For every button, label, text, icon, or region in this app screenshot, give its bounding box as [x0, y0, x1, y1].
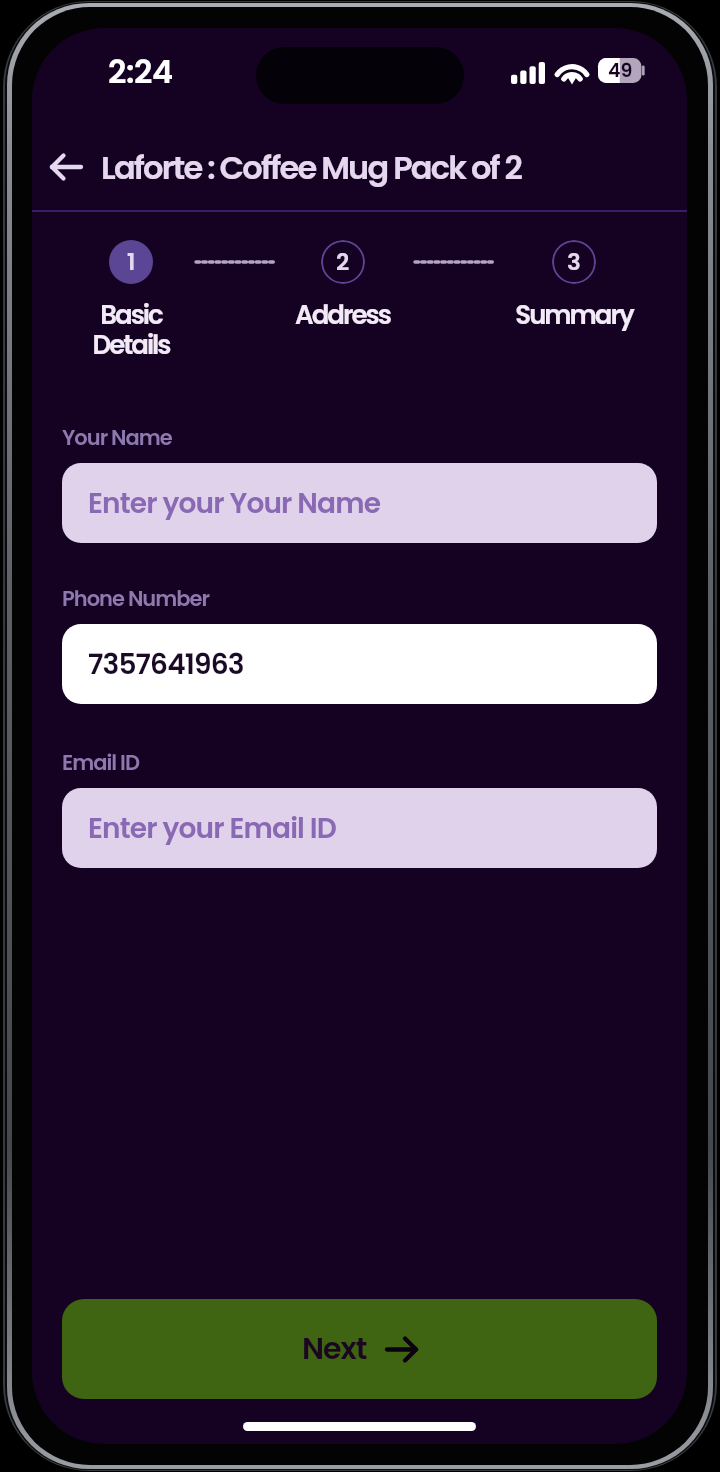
staticText: Basic Details	[92, 297, 170, 363]
button[interactable]: 7357641963	[62, 624, 657, 704]
staticText: 1	[127, 246, 136, 278]
staticText: 7357641963	[88, 645, 244, 684]
staticText: 49	[608, 57, 633, 84]
staticText: Email ID	[62, 748, 139, 777]
staticText: 2:24	[108, 49, 173, 94]
button[interactable]: 3	[515, 240, 633, 333]
button[interactable]: 2	[295, 240, 390, 333]
button[interactable]: Next	[62, 1299, 657, 1399]
staticText: Laforte : Coffee Mug Pack of 2	[101, 145, 522, 190]
button[interactable]: Enter your Email ID	[62, 788, 657, 868]
staticText: Enter your Email ID	[88, 809, 336, 848]
staticText: Address	[295, 297, 390, 333]
button[interactable]: Enter your Your Name	[62, 463, 657, 543]
staticText: 3	[567, 246, 581, 278]
button[interactable]: Back	[38, 139, 94, 195]
staticText: Enter your Your Name	[88, 484, 381, 523]
staticText: Next	[302, 1328, 367, 1370]
staticText: Summary	[515, 297, 633, 333]
staticText: Phone Number	[62, 584, 209, 613]
staticText: Your Name	[62, 423, 172, 452]
staticText: 2	[336, 246, 350, 278]
button[interactable]: 1	[92, 240, 170, 363]
